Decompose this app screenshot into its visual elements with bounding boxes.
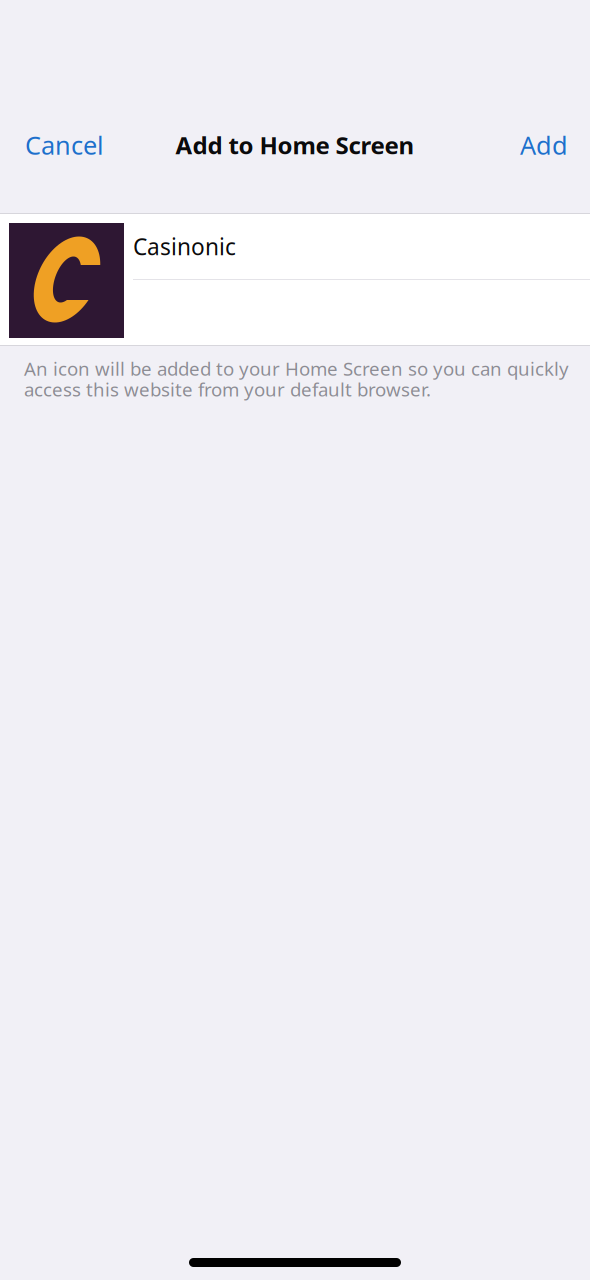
staticText: Add (520, 128, 568, 162)
button[interactable]: Cancel (0, 117, 124, 173)
staticText: Cancel (25, 128, 104, 162)
button[interactable]: Address (0, 280, 590, 345)
staticText: Casinonic (133, 231, 236, 261)
button[interactable]: Add (500, 117, 590, 173)
staticText: Add to Home Screen (175, 129, 414, 161)
staticText: access this website from your default br… (24, 377, 431, 402)
button[interactable]: Casinonic (0, 214, 590, 279)
staticText: An icon will be added to your Home Scree… (24, 356, 569, 381)
